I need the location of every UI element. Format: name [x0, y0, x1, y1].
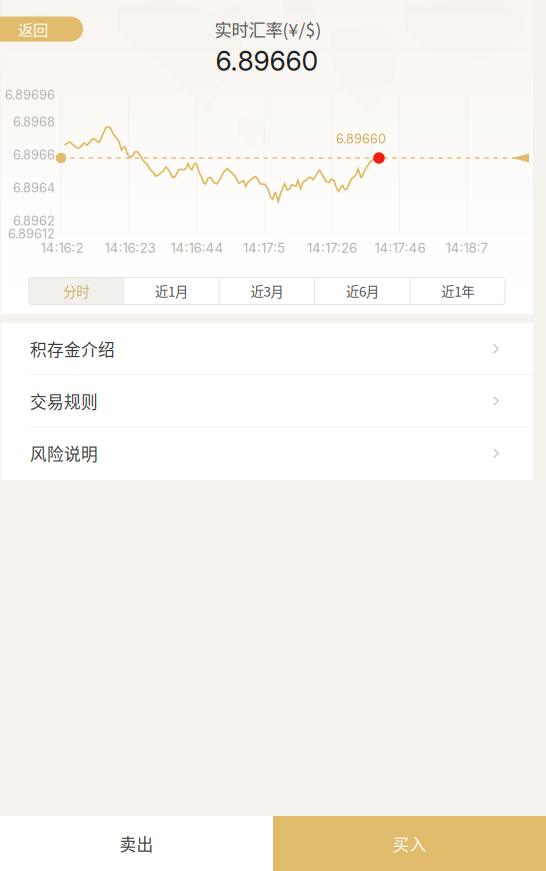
- staticText: 实时汇率(¥/$): [214, 16, 321, 42]
- staticText: 6.89612: [8, 226, 55, 242]
- staticText: 分时: [63, 281, 89, 301]
- button[interactable]: 分时: [29, 277, 123, 304]
- staticText: 6.89660: [336, 131, 386, 147]
- button[interactable]: 风险说明: [1, 428, 533, 480]
- staticText: 积存金介绍: [30, 337, 115, 361]
- staticText: 6.8968: [13, 114, 55, 130]
- button[interactable]: 买入: [273, 816, 546, 871]
- staticText: 卖出: [119, 831, 153, 855]
- staticText: 14:17:26: [307, 240, 357, 256]
- staticText: 14:16:44: [170, 240, 223, 256]
- staticText: 返回: [18, 18, 48, 40]
- staticText: 交易规则: [30, 389, 98, 413]
- staticText: 近1月: [155, 281, 188, 301]
- button[interactable]: 交易规则: [1, 375, 533, 428]
- staticText: 14:18:7: [445, 240, 488, 256]
- staticText: 6.8966: [13, 147, 55, 163]
- staticText: 近6月: [346, 281, 379, 301]
- staticText: 6.8962: [13, 213, 55, 229]
- button[interactable]: 卖出: [0, 816, 273, 871]
- staticText: 14:17:46: [374, 240, 425, 256]
- staticText: 14:16:23: [104, 240, 155, 256]
- staticText: 买入: [392, 831, 426, 855]
- button[interactable]: 积存金介绍: [1, 323, 533, 375]
- staticText: 6.8964: [13, 180, 55, 196]
- staticText: 6.89660: [215, 45, 318, 77]
- staticText: 14:17:5: [243, 240, 285, 256]
- button[interactable]: 返回: [0, 16, 83, 41]
- staticText: 6.89696: [5, 87, 55, 103]
- button[interactable]: 近1月: [124, 277, 219, 304]
- button[interactable]: 近6月: [315, 277, 410, 304]
- staticText: 近3月: [250, 281, 283, 301]
- button[interactable]: 近3月: [220, 277, 314, 304]
- staticText: 14:16:2: [40, 240, 83, 256]
- staticText: 风险说明: [30, 441, 98, 465]
- button[interactable]: 近1年: [411, 277, 505, 304]
- staticText: 近1年: [441, 281, 474, 301]
